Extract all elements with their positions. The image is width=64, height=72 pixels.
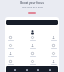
- button[interactable]: Item 4: [49, 52, 58, 57]
- button[interactable]: Item 1: [28, 36, 37, 41]
- button[interactable]: Item 2: [6, 52, 15, 57]
- button[interactable]: Item 4: [28, 60, 37, 65]
- button[interactable]: Item 2: [28, 44, 37, 49]
- button[interactable]: Item 1: [6, 44, 15, 49]
- button[interactable]: Item 5: [49, 60, 58, 65]
- button[interactable]: Item 3: [28, 52, 37, 57]
- button[interactable]: Tab 1: [24, 67, 29, 72]
- staticText: Boost your focus: [20, 1, 44, 5]
- button[interactable]: Item 3: [6, 60, 15, 65]
- button[interactable]: Tab 2: [35, 67, 40, 72]
- button[interactable]: Item 2: [49, 36, 58, 41]
- staticText: one task at a time: [22, 5, 43, 8]
- button[interactable]: Item 3: [49, 44, 58, 49]
- button[interactable]: Tab 3: [47, 67, 52, 72]
- button[interactable]: Get started: [28, 12, 36, 14]
- button[interactable]: Item 0: [6, 36, 15, 41]
- button[interactable]: Tab 0: [12, 67, 17, 72]
